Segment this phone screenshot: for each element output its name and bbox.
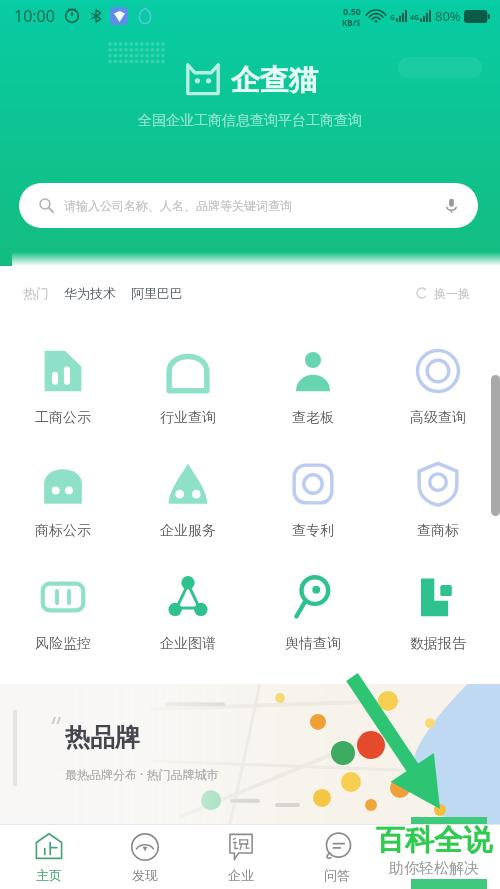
button[interactable]: 查专利 <box>250 461 375 574</box>
button[interactable]: 商标公示 <box>0 461 125 574</box>
button[interactable]: 高级查询 <box>375 348 500 461</box>
button[interactable]: 发现 <box>97 825 193 889</box>
button[interactable]: 查商标 <box>375 461 500 574</box>
staticText: 风险监控 <box>35 635 91 653</box>
staticText: 阿里巴巴 <box>131 285 183 301</box>
staticText: 助你轻松解决 <box>389 859 479 878</box>
button[interactable]: 热品牌 <box>0 684 500 824</box>
button[interactable]: 企业图谱 <box>125 574 250 687</box>
button[interactable]: 查老板 <box>250 348 375 461</box>
staticText: 0.50 <box>343 5 361 17</box>
button[interactable]: 请输入公司名称、人名、品牌等关键词查询 <box>19 183 478 228</box>
button[interactable]: 企业 <box>193 825 289 889</box>
staticText: 主页 <box>36 867 62 883</box>
staticText: 企业图谱 <box>160 635 216 653</box>
staticText: 热品牌 <box>65 722 140 753</box>
staticText: G <box>390 13 396 23</box>
button[interactable]: 华为技术 <box>64 285 116 301</box>
staticText: 4G <box>410 13 420 23</box>
staticText: 查商标 <box>417 522 459 540</box>
staticText: 百科全说 <box>376 822 492 859</box>
staticText: 问答 <box>324 867 350 883</box>
staticText: 最热品牌分布 · 热门品牌城市 <box>65 766 219 782</box>
staticText: 数据报告 <box>410 635 466 653</box>
staticText: 换一换 <box>434 286 470 301</box>
staticText: 高级查询 <box>410 409 466 427</box>
staticText: 舆情查询 <box>285 635 341 653</box>
staticText: 80% <box>435 7 461 25</box>
button[interactable]: 企业服务 <box>125 461 250 574</box>
staticText: 行业查询 <box>160 409 216 427</box>
other: Voice search <box>443 197 460 214</box>
staticText: 华为技术 <box>64 285 116 301</box>
button[interactable]: 行业查询 <box>125 348 250 461</box>
staticText: 查老板 <box>292 409 334 427</box>
button[interactable]: 舆情查询 <box>250 574 375 687</box>
button[interactable]: 工商公示 <box>0 348 125 461</box>
staticText: KB/S <box>342 17 361 28</box>
staticText: 企业 <box>228 867 254 883</box>
staticText: 热门 <box>23 285 49 301</box>
staticText: 发现 <box>132 867 158 883</box>
staticText: 工商公示 <box>35 409 91 427</box>
staticText: 10:00 <box>14 5 55 27</box>
staticText: 企业服务 <box>160 522 216 540</box>
button[interactable]: 问答 <box>289 825 385 889</box>
staticText: 全国企业工商信息查询平台工商查询 <box>138 112 362 130</box>
staticText: 请输入公司名称、人名、品牌等关键词查询 <box>64 198 292 213</box>
staticText: 商标公示 <box>35 522 91 540</box>
button[interactable]: 阿里巴巴 <box>131 285 183 301</box>
button[interactable]: 风险监控 <box>0 574 125 687</box>
other: Refresh <box>416 287 428 299</box>
button[interactable]: 数据报告 <box>375 574 500 687</box>
staticText: 企查猫 <box>231 62 318 99</box>
button[interactable]: 主页 <box>0 825 97 889</box>
staticText: 查专利 <box>292 522 334 540</box>
